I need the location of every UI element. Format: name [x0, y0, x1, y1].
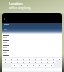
- staticText: with a very long: [9, 6, 31, 10]
- button[interactable]: [44, 61, 50, 63]
- button[interactable]: [3, 35, 62, 40]
- button[interactable]: [3, 50, 62, 55]
- button[interactable]: [2, 58, 8, 60]
- button[interactable]: [14, 58, 20, 60]
- button[interactable]: [2, 61, 8, 63]
- button[interactable]: [42, 64, 48, 67]
- button[interactable]: [8, 61, 14, 63]
- button[interactable]: [32, 58, 38, 60]
- button[interactable]: [38, 61, 44, 63]
- button[interactable]: [30, 64, 36, 67]
- button[interactable]: [56, 58, 62, 60]
- button[interactable]: [44, 58, 50, 60]
- button[interactable]: [32, 61, 38, 63]
- button[interactable]: [11, 64, 18, 67]
- button[interactable]: [36, 64, 42, 67]
- button[interactable]: [26, 58, 32, 60]
- button[interactable]: [26, 61, 32, 63]
- button[interactable]: [3, 45, 62, 50]
- button[interactable]: [3, 55, 62, 57]
- button[interactable]: [20, 61, 26, 63]
- button[interactable]: [48, 64, 54, 67]
- button[interactable]: [50, 61, 56, 63]
- staticText: Location: [9, 1, 23, 5]
- button[interactable]: [24, 64, 30, 67]
- button[interactable]: [8, 58, 14, 60]
- button[interactable]: [3, 40, 62, 45]
- button[interactable]: [38, 58, 44, 60]
- button[interactable]: [18, 64, 24, 67]
- button[interactable]: [50, 58, 56, 60]
- button[interactable]: [14, 61, 20, 63]
- button[interactable]: [20, 58, 26, 60]
